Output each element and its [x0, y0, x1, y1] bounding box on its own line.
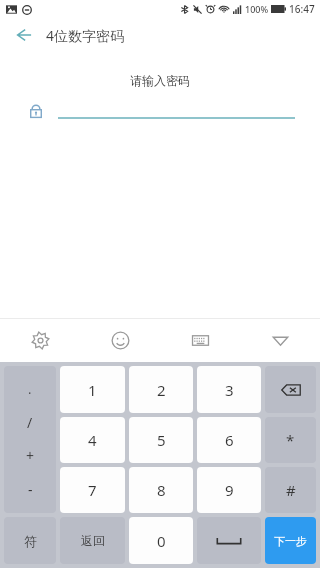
button[interactable]: 0 [129, 517, 193, 564]
button[interactable]: Keyboard layout [160, 318, 240, 362]
staticText: 16:47 [289, 2, 315, 16]
staticText: 2 [157, 380, 166, 400]
staticText: # [286, 480, 296, 500]
staticText: 5 [157, 430, 166, 450]
button[interactable]: 7 [60, 467, 125, 513]
button[interactable]: Settings [0, 318, 80, 362]
button[interactable]: 3 [197, 366, 261, 413]
button[interactable]: 5 [129, 417, 193, 463]
button[interactable]: 9 [197, 467, 261, 513]
button[interactable]: 4 [60, 417, 125, 463]
staticText: 6 [225, 430, 234, 450]
staticText: 7 [88, 480, 97, 500]
staticText: 返回 [81, 533, 105, 548]
button[interactable]: 6 [197, 417, 261, 463]
staticText: 1 [88, 380, 97, 400]
button[interactable]: 2 [129, 366, 193, 413]
staticText: 4 [88, 430, 97, 450]
button[interactable]: Backspace [265, 366, 316, 413]
button[interactable]: 1 [60, 366, 125, 413]
staticText: 请输入密码 [0, 73, 320, 88]
staticText: 4位数字密码 [46, 26, 125, 45]
button[interactable]: Hide keyboard [240, 318, 320, 362]
staticText: 3 [225, 380, 234, 400]
staticText: * [286, 430, 295, 450]
staticText: 9 [225, 480, 234, 500]
button[interactable]: 符 [4, 517, 56, 564]
staticText: / [27, 413, 33, 432]
button[interactable]: Emoji [80, 318, 160, 362]
staticText: 100% [245, 3, 269, 15]
button[interactable]: Back [8, 20, 38, 50]
staticText: 下一步 [274, 534, 307, 548]
button[interactable]: Space [197, 517, 261, 564]
staticText: 8 [157, 480, 166, 500]
button[interactable]: 8 [129, 467, 193, 513]
staticText: - [28, 480, 33, 499]
button[interactable]: Operators [4, 366, 56, 513]
button[interactable]: # [265, 467, 316, 513]
staticText: 0 [157, 531, 166, 551]
button[interactable]: * [265, 417, 316, 463]
staticText: . [28, 380, 32, 398]
staticText: 符 [24, 533, 37, 549]
staticText: + [26, 446, 35, 465]
button[interactable]: 下一步 [265, 517, 316, 564]
button[interactable]: 返回 [60, 517, 125, 564]
